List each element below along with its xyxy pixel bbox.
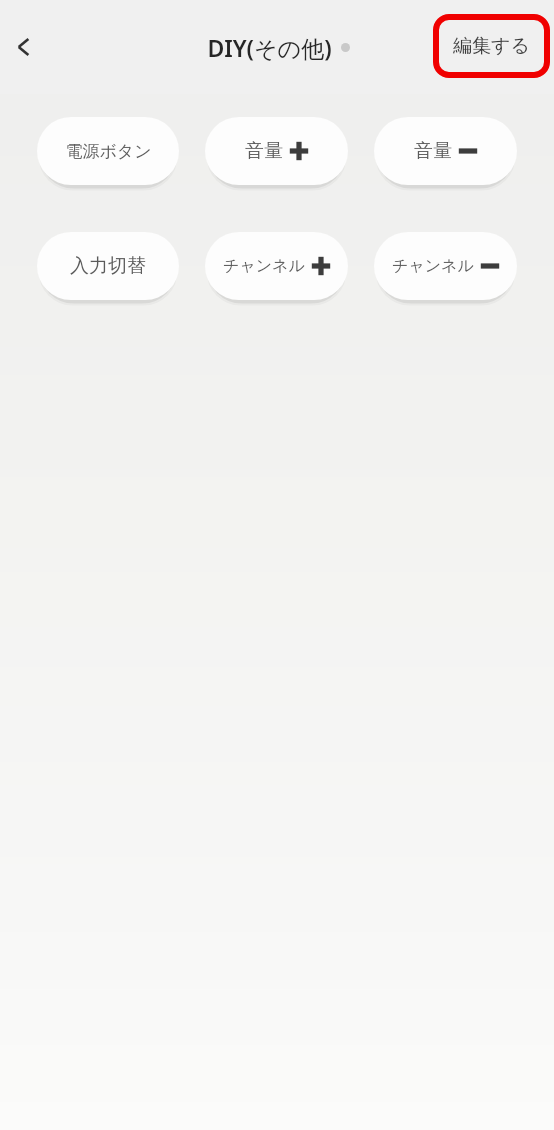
staticText: チャンネル: [223, 256, 305, 276]
button[interactable]: 編集する: [430, 11, 553, 81]
button[interactable]: Back: [2, 25, 46, 69]
staticText: 編集する: [453, 34, 530, 58]
staticText: DIY(その他): [207, 32, 332, 63]
staticText: 音量: [414, 139, 452, 163]
staticText: 電源ボタン: [65, 141, 152, 162]
staticText: 音量: [245, 139, 283, 163]
button[interactable]: 音量: [374, 117, 517, 185]
button[interactable]: チャンネル: [205, 232, 348, 300]
staticText: チャンネル: [392, 256, 474, 276]
button[interactable]: 音量: [205, 117, 348, 185]
button[interactable]: 電源ボタン: [37, 117, 179, 185]
staticText: 入力切替: [70, 254, 146, 278]
button[interactable]: チャンネル: [374, 232, 517, 300]
button[interactable]: 入力切替: [37, 232, 179, 300]
